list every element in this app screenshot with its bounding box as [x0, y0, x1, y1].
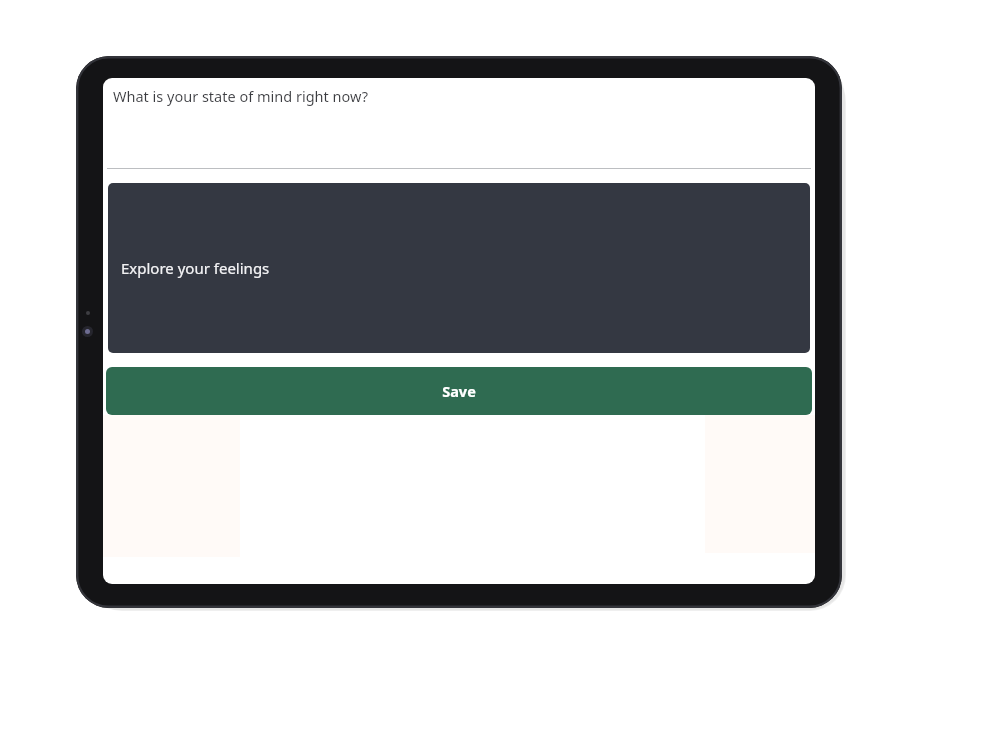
button[interactable]: State of mind input field — [103, 78, 815, 168]
button[interactable]: Explore your feelings — [108, 183, 810, 353]
button[interactable]: Save — [106, 367, 812, 415]
staticText: What is your state of mind right now? — [113, 86, 368, 106]
staticText: Save — [442, 381, 476, 401]
staticText: Explore your feelings — [121, 258, 270, 278]
